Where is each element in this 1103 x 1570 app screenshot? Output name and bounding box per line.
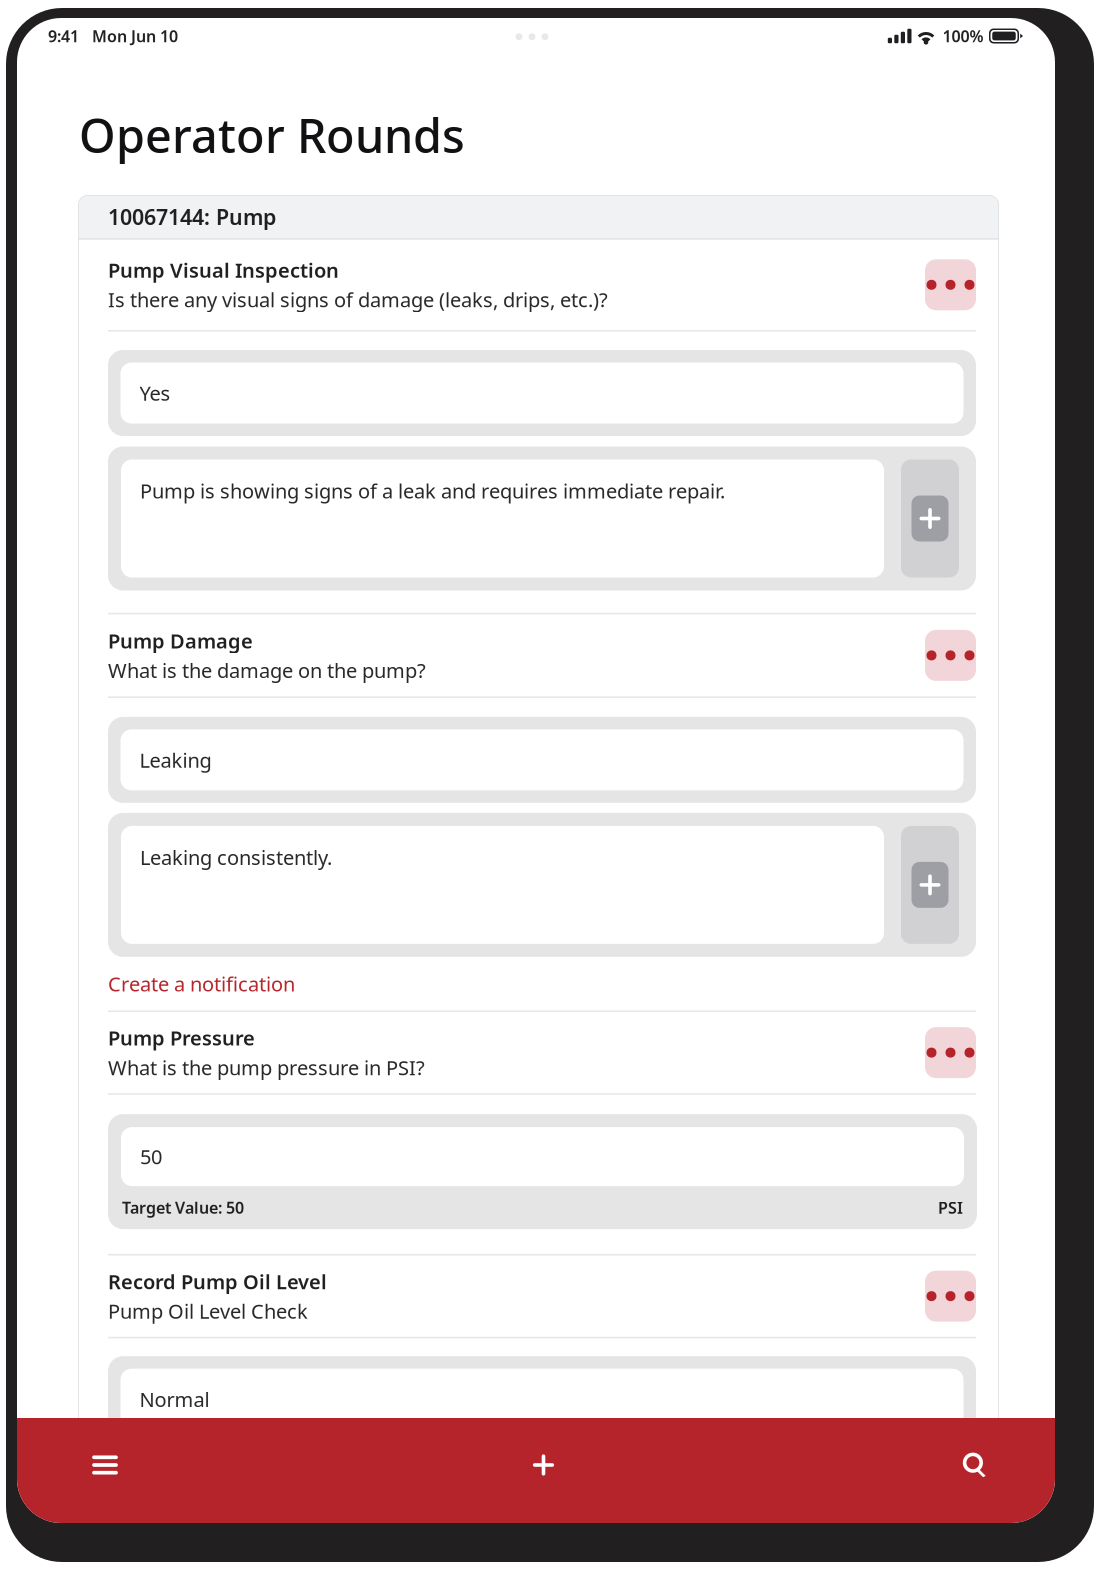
staticText: Create a notification — [108, 970, 295, 997]
staticText: 100% — [942, 25, 983, 47]
staticText: Pump is showing signs of a leak and requ… — [140, 477, 725, 504]
staticText: Target Value: 50 — [122, 1197, 244, 1218]
staticText: Pump Oil Level Check — [108, 1298, 308, 1324]
staticText: Leaking consistently. — [140, 844, 332, 870]
button[interactable]: Yes — [108, 350, 976, 436]
button[interactable]: Search — [914, 1415, 1036, 1514]
staticText: Mon Jun 10 — [92, 25, 178, 47]
staticText: Yes — [139, 380, 170, 406]
staticText: Pump Visual Inspection — [108, 257, 339, 283]
button[interactable]: New entry — [482, 1415, 604, 1514]
button[interactable]: More options — [925, 1027, 976, 1078]
button[interactable]: More options — [925, 630, 976, 681]
button[interactable]: Create a notification — [78, 957, 999, 1010]
staticText: Pump Pressure — [108, 1024, 255, 1051]
staticText: 10067144: Pump — [108, 202, 276, 231]
staticText: Record Pump Oil Level — [108, 1268, 327, 1295]
staticText: What is the pump pressure in PSI? — [108, 1054, 425, 1081]
staticText: Normal — [139, 1386, 209, 1412]
button[interactable]: Menu — [44, 1415, 166, 1514]
button[interactable]: Normal — [108, 1356, 976, 1442]
button[interactable]: More options — [925, 259, 976, 310]
staticText: Pump Damage — [108, 627, 253, 654]
button[interactable]: Add attachment — [901, 459, 959, 577]
button[interactable]: More options — [925, 1271, 976, 1322]
staticText: Is there any visual signs of damage (lea… — [108, 286, 608, 313]
staticText: 50 — [140, 1143, 162, 1170]
staticText: Leaking — [139, 747, 211, 773]
staticText: What is the damage on the pump? — [108, 657, 426, 683]
staticText: 9:41 — [48, 25, 79, 47]
staticText: Operator Rounds — [79, 104, 465, 166]
button[interactable]: Leaking — [108, 717, 976, 803]
staticText: PSI — [938, 1197, 963, 1218]
button[interactable]: Add attachment — [901, 826, 959, 944]
